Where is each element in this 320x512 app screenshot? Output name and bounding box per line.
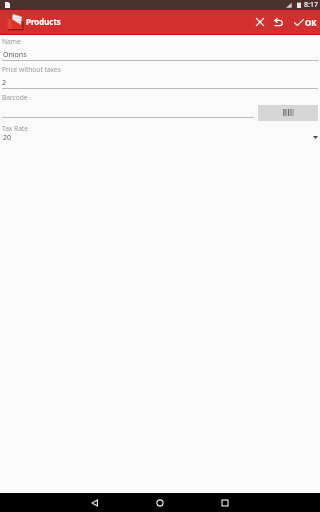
button[interactable]: Tax Rate [0,120,300,145]
staticText: Tax Rate [2,124,28,133]
button[interactable]: Undo [266,10,290,34]
button[interactable]: Recent apps [205,493,245,512]
staticText: Price without taxes [2,65,61,74]
staticText: Name [2,37,21,46]
button[interactable]: Select tax rate [300,124,320,146]
button[interactable]: Home [140,493,180,512]
button[interactable]: Price without taxes [0,62,320,88]
staticText: 20 [3,133,12,143]
button[interactable]: Barcode [0,90,254,117]
button[interactable]: Products [0,10,67,34]
staticText: Products [26,17,61,28]
button[interactable]: Scan barcode [258,105,318,121]
button[interactable]: OK [305,10,320,34]
button[interactable]: Back [75,493,115,512]
button[interactable]: Name [0,35,320,61]
staticText: OK [305,17,317,28]
button[interactable]: Confirm [292,10,306,34]
staticText: 2 [2,78,7,88]
button[interactable]: Close [248,10,272,34]
staticText: Onions [3,50,27,60]
staticText: Barcode [2,93,28,102]
staticText: 8:17 [304,0,318,10]
